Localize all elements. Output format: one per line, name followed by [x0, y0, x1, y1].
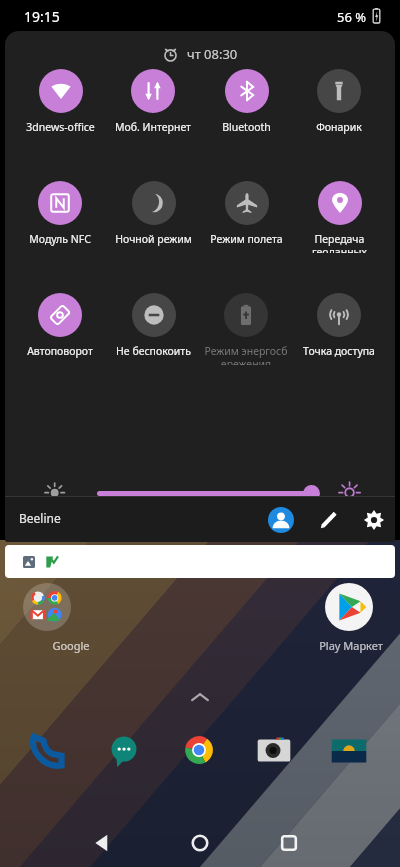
button[interactable]: Не беспокоить [107, 293, 199, 365]
button[interactable] [175, 727, 223, 775]
staticText: Фонарик [316, 120, 362, 134]
staticText: 56 % [320, 8, 366, 26]
button[interactable]: Модуль NFC [14, 181, 106, 253]
button[interactable]: Режим полета [200, 181, 292, 253]
button[interactable]: 3dnews-office [14, 69, 106, 141]
button[interactable]: Ночной режим [107, 181, 199, 253]
staticText: 3dnews-office [26, 120, 95, 134]
staticText: чт 08:30 [187, 45, 238, 63]
button[interactable]: Recents [278, 832, 300, 854]
button[interactable] [100, 727, 148, 775]
button[interactable]: Фонарик [293, 69, 385, 141]
button[interactable]: Моб. Интернет [107, 69, 199, 141]
button[interactable]: Beeline [19, 510, 61, 526]
staticText: Beeline [19, 510, 61, 526]
staticText: Модуль NFC [29, 232, 91, 246]
button[interactable]: Передача геоданных [293, 181, 385, 253]
button[interactable] [5, 545, 395, 578]
staticText: Ночной режим [115, 232, 192, 246]
button[interactable]: Settings [362, 508, 386, 532]
button[interactable] [23, 583, 71, 631]
staticText: Bluetooth [222, 120, 271, 134]
button[interactable]: Edit [316, 508, 340, 532]
button[interactable] [250, 727, 298, 775]
button[interactable]: Back [91, 832, 113, 854]
staticText: Google [23, 638, 119, 653]
staticText: Передача геоданных [312, 232, 367, 253]
staticText: Режим энергосб ережения [204, 344, 288, 365]
staticText: Точка доступа [303, 344, 375, 358]
staticText: Не беспокоить [116, 344, 191, 358]
staticText: Автоповорот [27, 344, 93, 358]
button[interactable] [97, 491, 312, 496]
button[interactable] [325, 583, 373, 631]
button[interactable]: Bluetooth [200, 69, 292, 141]
staticText: 19:15 [24, 7, 104, 26]
staticText: Моб. Интернет [115, 120, 191, 134]
button[interactable]: Режим энергосб ережения [200, 293, 292, 365]
button[interactable]: Home [189, 832, 211, 854]
button[interactable]: Автоповорот [14, 293, 106, 365]
button[interactable]: Точка доступа [293, 293, 385, 365]
button[interactable]: User [268, 507, 294, 533]
button[interactable] [25, 727, 73, 775]
staticText: Play Маркет [303, 638, 399, 653]
button[interactable] [325, 727, 373, 775]
staticText: Режим полета [210, 232, 283, 246]
